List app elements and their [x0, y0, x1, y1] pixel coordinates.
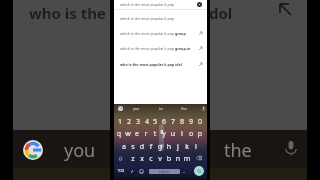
staticText: which is the most popular k pop	[120, 16, 175, 21]
staticText: 9	[181, 117, 201, 127]
staticText: you	[126, 106, 146, 111]
staticText: d	[132, 142, 152, 152]
staticText: w	[118, 129, 138, 139]
staticText: v	[150, 154, 170, 164]
staticText: 2	[119, 117, 139, 127]
staticText: .	[174, 169, 194, 174]
button[interactable]: which is the most popular k pop	[114, 0, 207, 9]
staticText: which is the most popular k pop	[120, 46, 175, 51]
button[interactable]: Search	[194, 166, 204, 176]
button[interactable]: who is the most popular k pop idol	[114, 58, 207, 70]
staticText: h	[159, 142, 179, 152]
button[interactable]: which is the most popular k pop	[114, 12, 207, 24]
staticText: group-in	[175, 46, 191, 51]
staticText: 4	[137, 117, 157, 127]
button[interactable]: Google	[13, 130, 307, 168]
staticText: who is the mo	[29, 3, 134, 23]
staticText: 3	[128, 117, 148, 127]
staticText: ?123	[111, 169, 131, 173]
staticText: 7	[163, 117, 183, 127]
button[interactable]: English	[149, 169, 180, 174]
staticText: b	[159, 154, 179, 164]
staticText: j	[168, 142, 188, 152]
staticText: f	[141, 142, 161, 152]
staticText: 8	[172, 117, 192, 127]
staticText: r	[136, 129, 156, 139]
staticText: s	[123, 142, 143, 152]
button[interactable]: Clear	[197, 2, 202, 7]
staticText: a	[114, 142, 134, 152]
staticText: to	[151, 106, 171, 111]
button[interactable]: which is the most popular k pop	[114, 42, 207, 54]
staticText: i	[172, 129, 192, 139]
staticText: g	[150, 142, 170, 152]
staticText: t	[145, 129, 165, 139]
staticText: e	[127, 129, 147, 139]
staticText: o	[181, 129, 201, 139]
staticText: g	[152, 128, 172, 134]
staticText: q	[109, 129, 129, 139]
staticText: n	[168, 154, 188, 164]
staticText: x	[132, 154, 152, 164]
staticText: l	[186, 142, 206, 152]
staticText: dol	[209, 3, 233, 23]
staticText: /	[122, 169, 142, 174]
button[interactable]: Expand	[277, 1, 293, 17]
staticText: y	[154, 129, 174, 139]
staticText: u	[163, 129, 183, 139]
staticText: English	[159, 170, 170, 174]
staticText: the	[174, 106, 194, 111]
staticText: z	[123, 154, 143, 164]
staticText: 6	[154, 117, 174, 127]
staticText: who is the most popular k pop idol	[120, 62, 182, 67]
staticText: m	[177, 154, 197, 164]
button[interactable]: which is the most popular k pop	[114, 27, 207, 39]
button[interactable]: Voice search	[282, 139, 300, 157]
staticText: c	[141, 154, 161, 164]
staticText: you	[64, 138, 96, 163]
staticText: which is the most popular k pop	[120, 2, 175, 7]
button[interactable]: you	[114, 104, 207, 113]
staticText: group	[175, 31, 186, 36]
staticText: the	[224, 138, 252, 163]
staticText: 1	[110, 117, 130, 127]
staticText: p	[190, 129, 210, 139]
staticText: which is the most popular k pop	[120, 31, 175, 36]
other: Google	[23, 140, 43, 160]
staticText: 5	[145, 117, 165, 127]
staticText: k	[177, 142, 197, 152]
staticText: 0	[190, 117, 210, 127]
